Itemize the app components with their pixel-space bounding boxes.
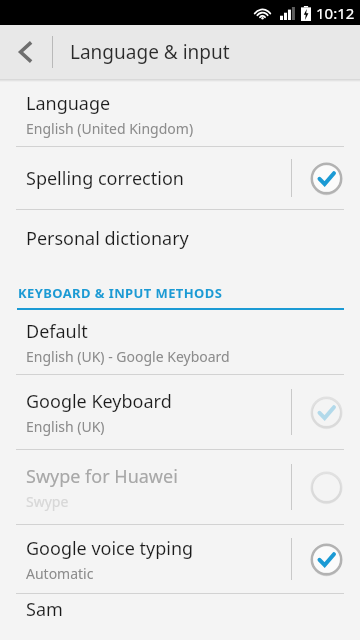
staticText: Personal dictionary [26, 226, 189, 251]
button[interactable]: Toggle Spelling correction [292, 147, 360, 209]
staticText: KEYBOARD & INPUT METHODS [18, 284, 223, 302]
button[interactable]: Default [0, 310, 360, 374]
button[interactable]: Google voice typing [0, 525, 360, 593]
button[interactable]: Google Keyboard [0, 375, 360, 449]
button[interactable]: Sam [0, 594, 360, 624]
button[interactable]: Swype for Huawei [0, 450, 360, 524]
button[interactable]: Toggle Google Keyboard [292, 375, 360, 449]
staticText: Spelling correction [26, 166, 184, 191]
staticText: Automatic [26, 564, 94, 583]
staticText: Google Keyboard [26, 389, 172, 414]
staticText: Default [26, 319, 88, 344]
staticText: English (UK) - Google Keyboard [26, 347, 230, 366]
button[interactable]: Navigate up [0, 25, 52, 79]
staticText: Language & input [70, 39, 230, 65]
button[interactable]: Language [0, 82, 360, 146]
staticText: Language [26, 91, 111, 116]
button[interactable]: Toggle Swype for Huawei [292, 450, 360, 524]
button[interactable]: Toggle Google voice typing [292, 525, 360, 593]
button[interactable]: Personal dictionary [0, 210, 360, 266]
staticText: English (UK) [26, 417, 105, 436]
staticText: Swype for Huawei [26, 464, 178, 489]
staticText: Swype [26, 492, 69, 511]
staticText: Sam [26, 597, 63, 622]
staticText: English (United Kingdom) [26, 119, 194, 138]
staticText: 10:12 [316, 3, 355, 23]
staticText: Google voice typing [26, 536, 194, 561]
button[interactable]: Spelling correction [0, 147, 360, 209]
